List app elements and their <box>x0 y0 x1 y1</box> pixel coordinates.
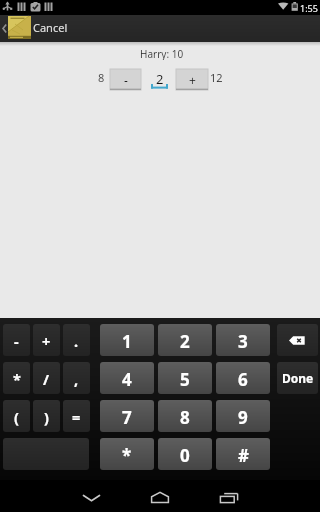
button[interactable] <box>277 324 318 356</box>
button[interactable]: - <box>3 324 30 356</box>
staticText: + <box>42 331 51 351</box>
staticText: 8 <box>180 406 190 429</box>
staticText: Harry: 10 <box>140 47 184 60</box>
button[interactable]: 1 <box>100 324 154 356</box>
staticText: * <box>13 369 21 389</box>
button[interactable]: * <box>100 438 154 470</box>
button[interactable]: 0 <box>158 438 212 470</box>
button[interactable]: * <box>3 362 30 394</box>
button[interactable]: ( <box>3 400 30 432</box>
button[interactable]: # <box>216 438 270 470</box>
button[interactable]: . <box>63 324 90 356</box>
button[interactable]: - <box>110 69 141 90</box>
staticText: 5 <box>180 368 190 391</box>
staticText: 4 <box>122 368 132 391</box>
staticText: 2 <box>156 70 164 88</box>
staticText: 3 <box>238 330 248 353</box>
button[interactable]: 7 <box>100 400 154 432</box>
staticText: 1:55 <box>300 2 318 14</box>
staticText: 6 <box>238 368 248 391</box>
button[interactable]: 9 <box>216 400 270 432</box>
button[interactable]: 6 <box>216 362 270 394</box>
button[interactable] <box>3 438 89 470</box>
staticText: . <box>74 331 79 351</box>
button[interactable] <box>71 480 111 512</box>
button[interactable]: / <box>33 362 60 394</box>
staticText: 0 <box>180 444 190 467</box>
button[interactable]: = <box>63 400 90 432</box>
staticText: + <box>189 72 196 88</box>
button[interactable] <box>140 480 180 512</box>
staticText: ) <box>44 407 49 427</box>
button[interactable]: , <box>63 362 90 394</box>
button[interactable]: 5 <box>158 362 212 394</box>
staticText: , <box>74 369 79 389</box>
button[interactable]: 8 <box>158 400 212 432</box>
staticText: 8 <box>98 70 105 85</box>
staticText: 12 <box>210 70 223 85</box>
button[interactable]: Done <box>277 362 318 394</box>
button[interactable]: ) <box>33 400 60 432</box>
staticText: - <box>124 72 128 88</box>
staticText: ( <box>14 407 19 427</box>
button[interactable]: 3 <box>216 324 270 356</box>
staticText: 1 <box>122 330 132 353</box>
button[interactable] <box>0 15 33 42</box>
staticText: / <box>43 369 50 389</box>
button[interactable] <box>210 480 250 512</box>
button[interactable]: Cancel <box>33 14 93 41</box>
staticText: = <box>72 407 81 427</box>
staticText: 7 <box>122 406 132 429</box>
staticText: 9 <box>238 406 248 429</box>
button[interactable]: 4 <box>100 362 154 394</box>
button[interactable]: + <box>176 69 208 90</box>
staticText: Done <box>282 370 314 386</box>
button[interactable]: + <box>33 324 60 356</box>
staticText: * <box>122 444 132 467</box>
staticText: # <box>238 444 249 467</box>
staticText: Cancel <box>33 20 68 35</box>
button[interactable]: 2 <box>146 67 173 91</box>
staticText: - <box>14 331 19 351</box>
staticText: 2 <box>180 330 190 353</box>
button[interactable]: 2 <box>158 324 212 356</box>
